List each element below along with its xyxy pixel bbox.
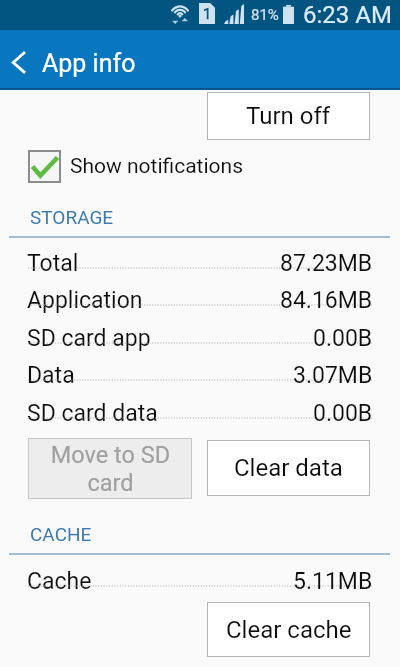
staticText: 87.23MB bbox=[280, 250, 373, 277]
button[interactable]: Turn off bbox=[207, 92, 370, 140]
button[interactable]: Clear data bbox=[207, 440, 370, 496]
staticText: 1 bbox=[203, 5, 212, 23]
button[interactable]: SD card app bbox=[0, 322, 400, 356]
staticText: Show notifications bbox=[70, 154, 243, 179]
button[interactable]: Application bbox=[0, 284, 400, 318]
staticText: STORAGE bbox=[30, 206, 114, 228]
staticText: Turn off bbox=[246, 102, 331, 130]
button[interactable]: Move to SD card bbox=[28, 438, 192, 499]
staticText: 0.00B bbox=[313, 400, 373, 427]
button[interactable]: Navigate up bbox=[0, 30, 38, 88]
staticText: App info bbox=[42, 49, 136, 78]
staticText: Clear cache bbox=[226, 616, 352, 644]
staticText: SD card app bbox=[27, 325, 151, 352]
staticText: Move to SD card bbox=[48, 441, 173, 497]
staticText: Total bbox=[27, 250, 79, 277]
button[interactable]: Cache bbox=[0, 565, 400, 599]
staticText: 84.16MB bbox=[280, 287, 373, 314]
staticText: 3.07MB bbox=[293, 362, 373, 389]
staticText: Cache bbox=[27, 568, 92, 595]
staticText: 0.00B bbox=[313, 325, 373, 352]
staticText: Application bbox=[27, 287, 143, 314]
staticText: SD card data bbox=[27, 400, 158, 427]
button[interactable]: SD card data bbox=[0, 397, 400, 431]
button[interactable]: Data bbox=[0, 359, 400, 393]
button[interactable]: Total bbox=[0, 247, 400, 281]
staticText: Data bbox=[27, 362, 75, 389]
staticText: 6:23 AM bbox=[303, 1, 392, 29]
button[interactable]: Clear cache bbox=[207, 602, 370, 657]
staticText: 5.11MB bbox=[293, 568, 373, 595]
staticText: CACHE bbox=[30, 523, 92, 545]
button[interactable]: Show notifications bbox=[0, 144, 400, 189]
staticText: 81% bbox=[251, 6, 279, 24]
staticText: Clear data bbox=[234, 454, 343, 482]
